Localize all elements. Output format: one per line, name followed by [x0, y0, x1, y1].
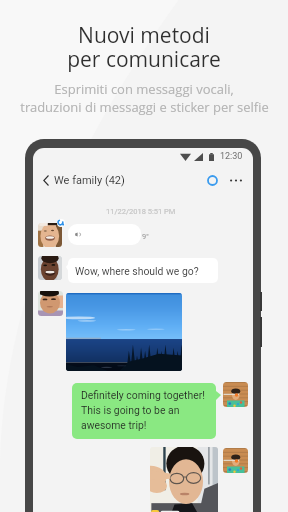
- button[interactable]: More options: [224, 168, 248, 192]
- button[interactable]: Play voice message: [68, 224, 141, 245]
- staticText: 9": [142, 232, 149, 241]
- staticText: We family (42): [54, 174, 125, 187]
- staticText: Definitely coming together! This is goin…: [81, 389, 211, 431]
- staticText: Nuovi metodi: [78, 21, 210, 50]
- staticText: 12:30: [220, 151, 243, 162]
- button[interactable]: Back: [35, 167, 56, 193]
- button[interactable]: Definitely coming together! This is goin…: [72, 383, 216, 439]
- staticText: per comunicare: [67, 45, 221, 74]
- button[interactable]: Sync: [200, 168, 224, 192]
- button[interactable]: Photo of the sea: [66, 293, 182, 371]
- button[interactable]: Wow, where should we go?: [68, 258, 218, 283]
- staticText: traduzioni di messaggi e sticker per sel…: [20, 98, 269, 116]
- staticText: 11/22/2018 5:51 PM: [106, 207, 176, 216]
- staticText: Esprimiti con messaggi vocali,: [54, 80, 234, 98]
- button[interactable]: Selfie video message: [150, 447, 218, 512]
- staticText: Wow, where should we go?: [75, 265, 199, 277]
